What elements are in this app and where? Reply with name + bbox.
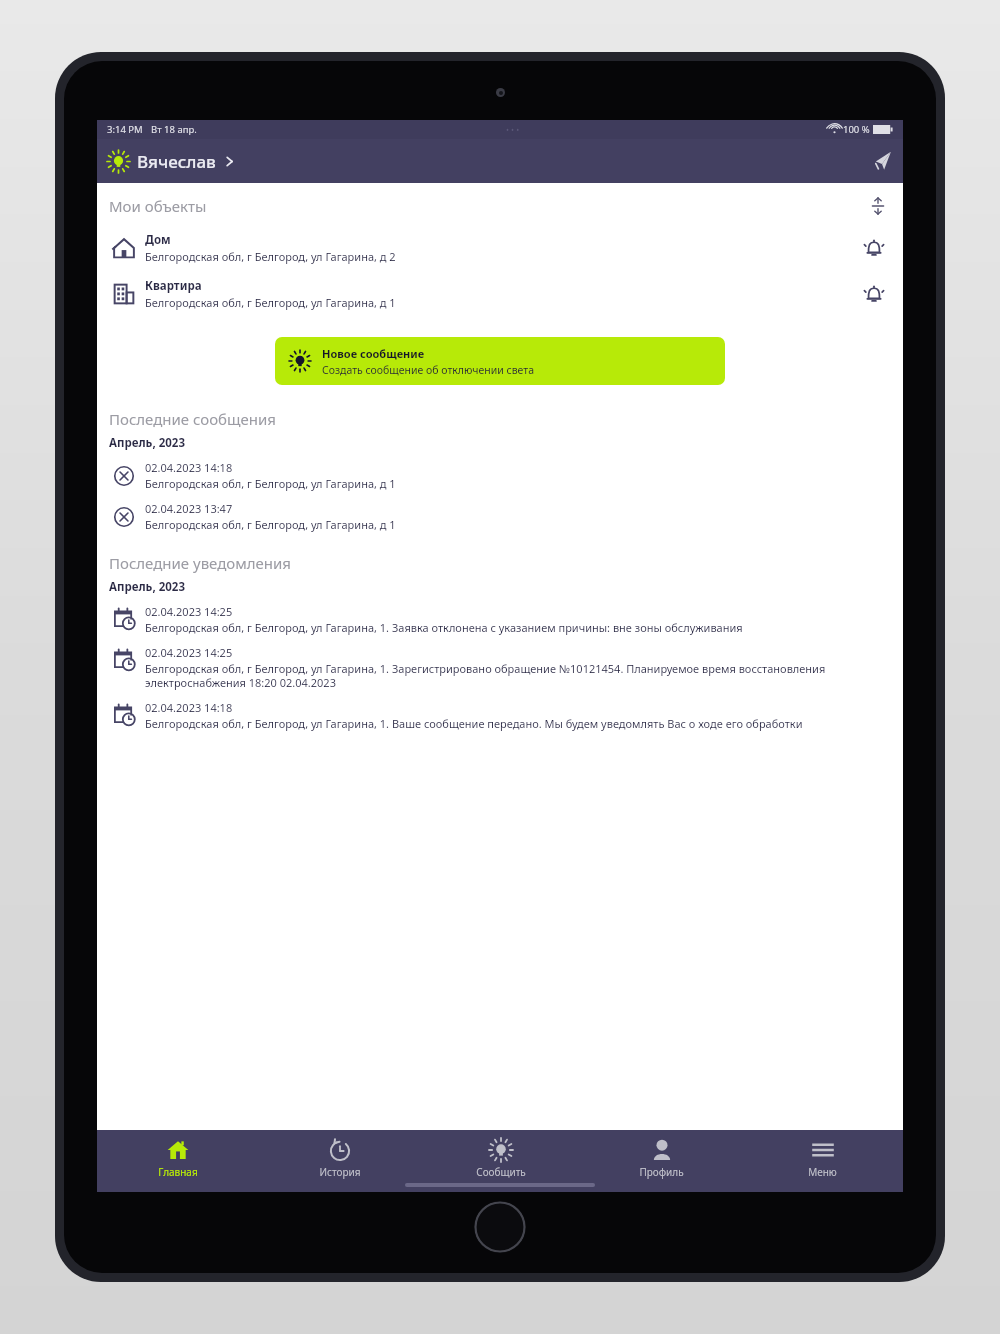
staticText: История bbox=[319, 1165, 361, 1179]
staticText: Белгородская обл, г Белгород, ул Гагарин… bbox=[145, 295, 396, 310]
staticText: Создать сообщение об отключении света bbox=[322, 363, 534, 377]
button[interactable]: 02.04.2023 13:47 bbox=[97, 496, 903, 537]
staticText: Новое сообщение bbox=[322, 346, 425, 361]
button[interactable]: Профиль bbox=[639, 1130, 684, 1192]
staticText: Главная bbox=[158, 1165, 198, 1179]
staticText: 02.04.2023 14:18 bbox=[145, 460, 233, 475]
button[interactable]: Квартира bbox=[97, 273, 903, 315]
staticText: Белгородская обл, г Белгород, ул Гагарин… bbox=[145, 517, 396, 532]
staticText: Меню bbox=[808, 1165, 837, 1179]
button[interactable]: 02.04.2023 14:18 bbox=[97, 695, 903, 736]
staticText: Сообщить bbox=[476, 1165, 526, 1179]
staticText: Дом bbox=[145, 232, 171, 248]
staticText: Последние уведомления bbox=[109, 553, 891, 573]
staticText: Белгородская обл, г Белгород, ул Гагарин… bbox=[145, 249, 396, 264]
staticText: Вт 18 апр. bbox=[151, 123, 197, 136]
button[interactable]: Вячеслав bbox=[97, 146, 246, 177]
staticText: Вячеслав bbox=[137, 150, 216, 173]
button[interactable]: Сообщить bbox=[476, 1130, 526, 1192]
button[interactable]: История bbox=[319, 1130, 361, 1192]
button[interactable]: 02.04.2023 14:25 bbox=[97, 640, 903, 695]
staticText: Квартира bbox=[145, 278, 202, 294]
button[interactable]: Уведомления bbox=[857, 231, 891, 265]
staticText: Белгородская обл, г Белгород, ул Гагарин… bbox=[145, 476, 396, 491]
staticText: Апрель, 2023 bbox=[109, 579, 185, 595]
staticText: 02.04.2023 13:47 bbox=[145, 501, 233, 516]
staticText: 02.04.2023 14:25 bbox=[145, 645, 233, 660]
staticText: 02.04.2023 14:25 bbox=[145, 604, 233, 619]
button[interactable]: 02.04.2023 14:25 bbox=[97, 599, 903, 640]
staticText: 02.04.2023 14:18 bbox=[145, 700, 233, 715]
staticText: 100 % bbox=[843, 123, 870, 136]
button[interactable]: Новое сообщение bbox=[275, 337, 725, 385]
staticText: Мои объекты bbox=[109, 196, 865, 216]
staticText: Белгородская обл, г Белгород, ул Гагарин… bbox=[145, 620, 743, 635]
staticText: Последние сообщения bbox=[109, 409, 891, 429]
button[interactable]: 02.04.2023 14:18 bbox=[97, 455, 903, 496]
button[interactable]: Отправить bbox=[859, 139, 903, 183]
staticText: 3:14 PM bbox=[107, 123, 143, 136]
button[interactable]: Уведомления bbox=[857, 277, 891, 311]
staticText: Белгородская обл, г Белгород, ул Гагарин… bbox=[145, 716, 803, 731]
button[interactable]: Главная bbox=[158, 1130, 198, 1192]
staticText: • • • bbox=[506, 124, 520, 135]
button[interactable]: Меню bbox=[808, 1130, 837, 1192]
staticText: Апрель, 2023 bbox=[109, 435, 185, 451]
button[interactable]: Сортировка bbox=[865, 193, 891, 219]
button[interactable]: Дом bbox=[97, 227, 903, 269]
staticText: Профиль bbox=[639, 1165, 684, 1179]
staticText: Белгородская обл, г Белгород, ул Гагарин… bbox=[145, 661, 889, 690]
